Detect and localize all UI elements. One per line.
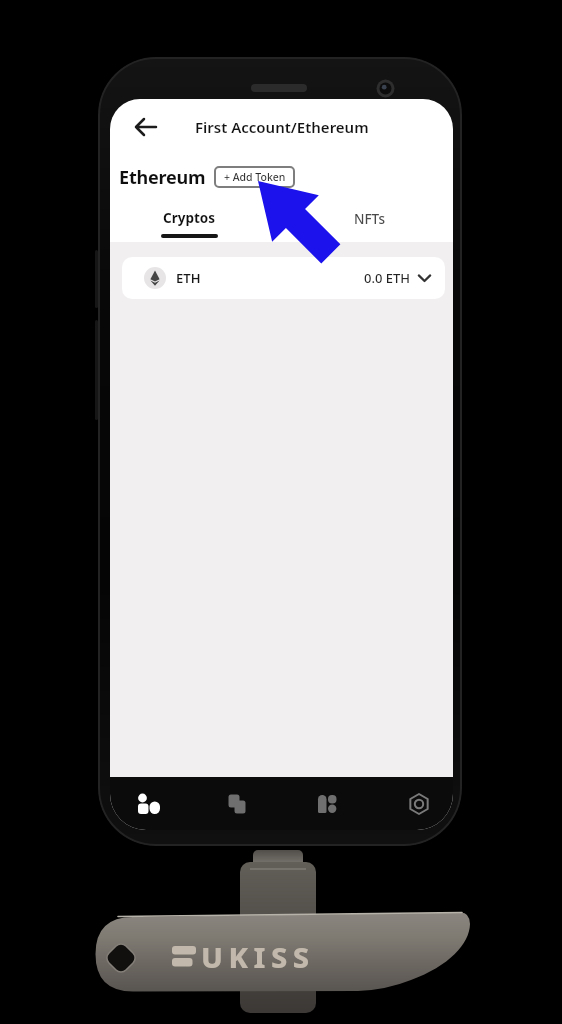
button[interactable]: Cryptos	[110, 199, 281, 242]
button[interactable]	[128, 109, 164, 145]
button[interactable]: NFTs	[282, 199, 453, 242]
staticText: Ethereum	[119, 165, 206, 190]
button[interactable]	[117, 777, 181, 830]
button[interactable]: + Add Token	[214, 166, 295, 188]
staticText: First Account/Ethereum	[195, 117, 369, 137]
button[interactable]	[387, 777, 451, 830]
staticText: ETH	[176, 269, 201, 287]
staticText: + Add Token	[224, 170, 286, 184]
button[interactable]	[205, 777, 269, 830]
button[interactable]: ETH	[122, 257, 445, 299]
button[interactable]	[295, 777, 359, 830]
staticText: UKISS	[201, 937, 315, 976]
staticText: 0.0 ETH	[364, 269, 411, 287]
staticText: Cryptos	[163, 209, 216, 227]
staticText: NFTs	[354, 210, 385, 228]
